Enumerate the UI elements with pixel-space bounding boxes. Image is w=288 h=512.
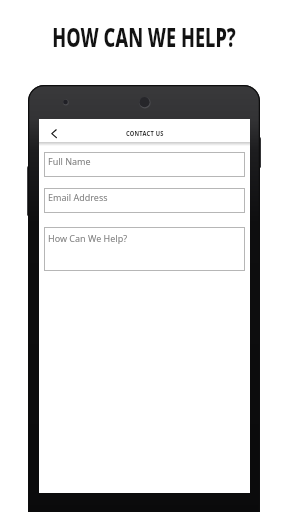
staticText: Full Name bbox=[48, 155, 91, 167]
staticText: HOW CAN WE HELP? bbox=[52, 18, 236, 55]
staticText: CONTACT US bbox=[126, 128, 164, 138]
button[interactable]: Full Name bbox=[44, 152, 245, 177]
button[interactable]: Email Address bbox=[44, 188, 245, 213]
staticText: Email Address bbox=[48, 191, 108, 203]
button[interactable]: How Can We Help? bbox=[44, 227, 245, 271]
button[interactable] bbox=[45, 123, 65, 143]
staticText: How Can We Help? bbox=[48, 232, 128, 244]
